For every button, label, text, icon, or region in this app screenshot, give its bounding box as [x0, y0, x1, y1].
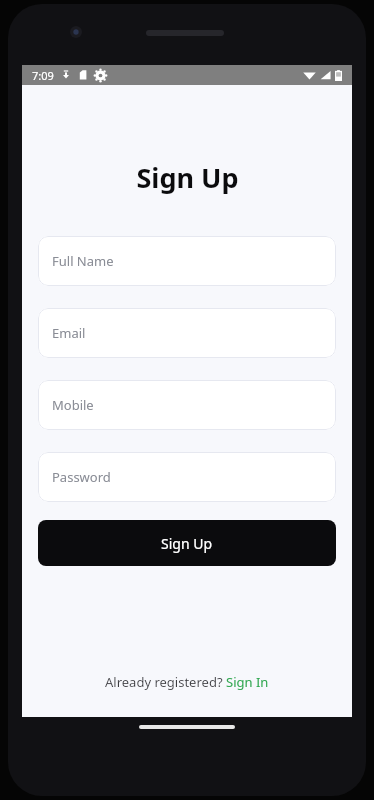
- staticText: Full Name: [52, 252, 114, 270]
- staticText: Mobile: [52, 396, 94, 414]
- staticText: Sign Up: [161, 534, 213, 553]
- staticText: Password: [52, 468, 111, 486]
- button[interactable]: Password: [38, 452, 336, 502]
- staticText: Sign In: [226, 673, 269, 691]
- button[interactable]: Email: [38, 308, 336, 358]
- staticText: Sign Up: [136, 159, 239, 196]
- staticText: Already registered?: [105, 673, 226, 691]
- button[interactable]: Mobile: [38, 380, 336, 430]
- button[interactable]: Sign Up: [38, 520, 336, 566]
- staticText: Email: [52, 324, 86, 342]
- button[interactable]: Full Name: [38, 236, 336, 286]
- staticText: 7:09: [32, 68, 54, 83]
- button[interactable]: Sign In: [226, 673, 269, 691]
